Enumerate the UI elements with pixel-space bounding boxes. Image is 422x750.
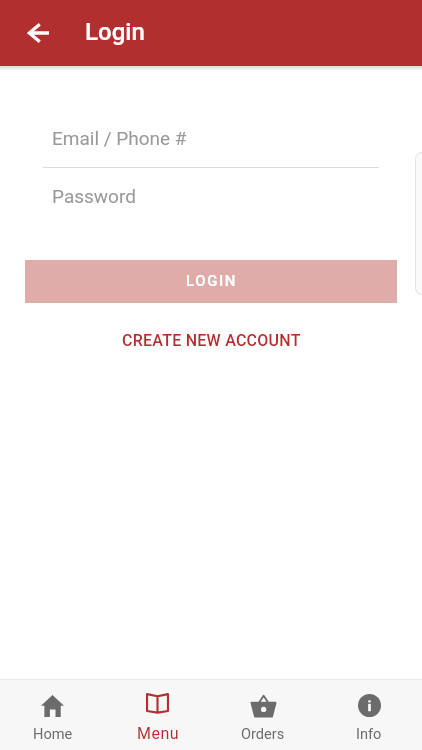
staticText: Login [85,18,145,46]
staticText: Info [356,725,382,742]
staticText: Email / Phone # [52,127,187,149]
button[interactable]: Back [15,10,60,55]
staticText: LOGIN [186,272,238,290]
button[interactable]: Password [43,176,379,216]
button[interactable]: Info [316,680,422,750]
button[interactable]: Orders [210,680,316,750]
button[interactable]: Home [0,680,105,750]
button[interactable]: Menu [105,680,210,750]
button[interactable]: CREATE NEW ACCOUNT [106,324,317,357]
staticText: Password [52,185,136,207]
button[interactable]: LOGIN [25,260,397,303]
staticText: Orders [241,725,285,742]
staticText: CREATE NEW ACCOUNT [122,331,301,350]
button[interactable]: Email / Phone # [43,118,379,158]
staticText: Home [33,725,73,742]
staticText: Menu [137,724,180,743]
